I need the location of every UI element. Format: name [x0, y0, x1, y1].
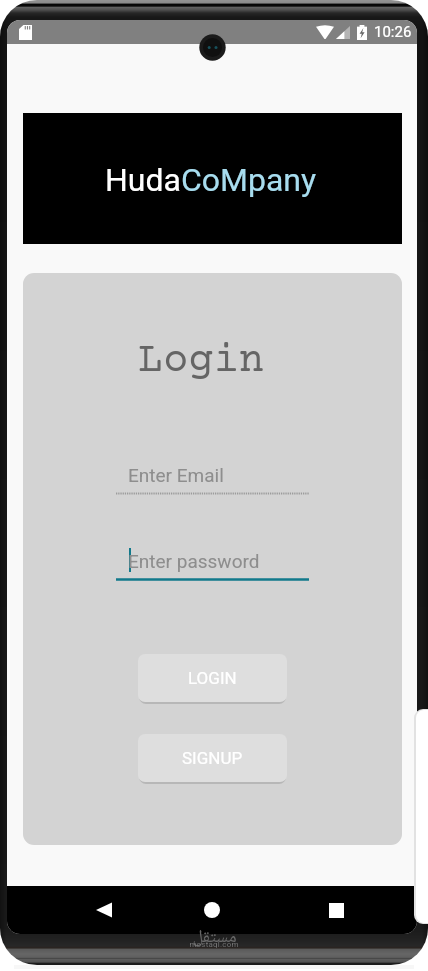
staticText: mostaql.com [189, 940, 239, 949]
button[interactable]: SIGNUP [138, 734, 287, 782]
button[interactable]: Back [80, 886, 128, 934]
staticText: SIGNUP [182, 748, 243, 768]
staticText: LOGIN [188, 668, 237, 688]
button[interactable]: Home [188, 886, 236, 934]
button[interactable]: Enter password [116, 549, 309, 581]
staticText: 10:26 [374, 23, 412, 41]
staticText: Enter password [128, 550, 260, 572]
button[interactable]: Enter Email [116, 463, 309, 495]
staticText: مستقل [192, 923, 237, 953]
staticText: Login [138, 338, 264, 385]
staticText: Enter Email [128, 464, 224, 486]
button[interactable]: LOGIN [138, 654, 287, 702]
staticText: HudaCoMpany [105, 161, 317, 199]
button[interactable]: Recent apps [312, 886, 360, 934]
